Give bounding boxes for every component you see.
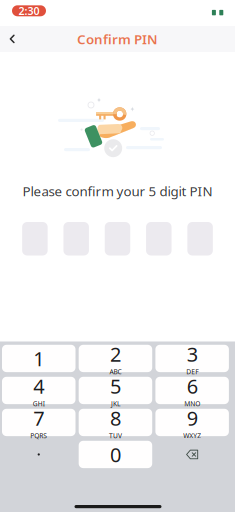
staticText: MNO <box>184 399 200 408</box>
button[interactable]: Decimal point <box>2 441 75 468</box>
staticText: PQRS <box>30 431 47 440</box>
button[interactable]: 9 <box>155 409 229 436</box>
button[interactable]: 1 <box>2 345 75 372</box>
staticText: JKL <box>111 399 120 408</box>
button[interactable]: Delete <box>155 441 229 468</box>
staticText: 9 <box>187 405 198 431</box>
staticText: TUV <box>109 431 122 440</box>
staticText: 1 <box>33 345 44 372</box>
button[interactable]: 3 <box>155 345 229 372</box>
button[interactable]: 2 <box>79 345 152 372</box>
button[interactable]: 6 <box>155 377 229 404</box>
staticText: Please confirm your 5 digit PIN <box>22 182 212 200</box>
button[interactable]: 4 <box>2 377 75 404</box>
staticText: WXYZ <box>183 431 201 440</box>
button[interactable]: 7 <box>2 409 75 436</box>
staticText: Confirm PIN <box>77 30 158 48</box>
staticText: 0 <box>110 441 121 468</box>
button[interactable]: Back <box>0 26 24 52</box>
staticText: 4 <box>33 373 44 399</box>
staticText: 8 <box>110 405 121 431</box>
staticText: DEF <box>186 367 198 376</box>
staticText: GHI <box>33 399 45 408</box>
staticText: 5 <box>110 373 121 399</box>
staticText: 7 <box>33 405 44 431</box>
staticText: 2 <box>110 341 121 367</box>
staticText: ABC <box>109 367 121 376</box>
staticText: 6 <box>187 373 198 399</box>
button[interactable]: 0 <box>79 441 152 468</box>
staticText: 2:30 <box>18 4 39 18</box>
button[interactable]: 5 <box>79 377 152 404</box>
button[interactable]: 8 <box>79 409 152 436</box>
staticText: 3 <box>187 341 198 367</box>
